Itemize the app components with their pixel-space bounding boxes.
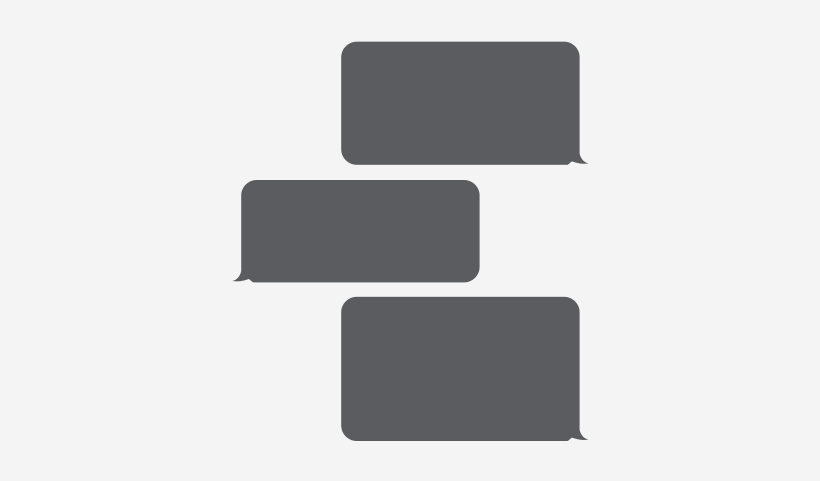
button[interactable]: Message received: [232, 180, 480, 282]
button[interactable]: Message from you: [341, 42, 588, 165]
button[interactable]: Message from you: [341, 297, 588, 441]
